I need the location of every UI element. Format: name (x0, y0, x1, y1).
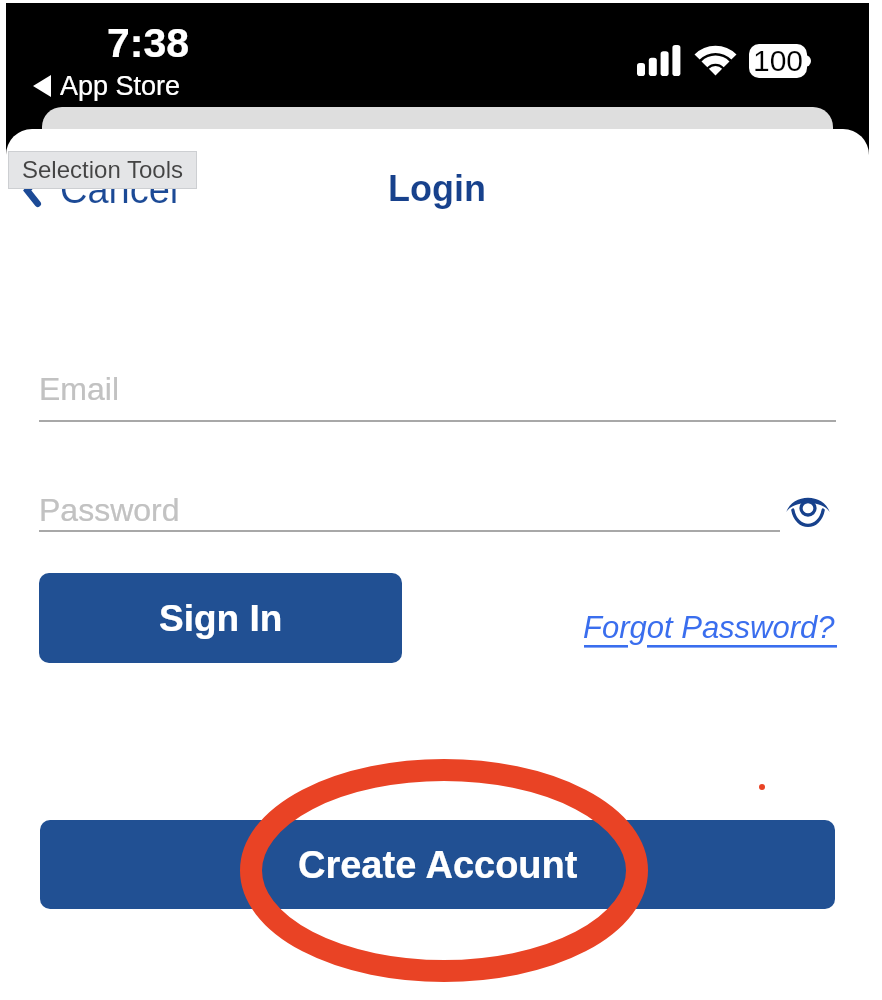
button[interactable]: Forgot Password? (583, 610, 843, 645)
staticText: 100 (753, 44, 804, 78)
button[interactable]: App Store (33, 71, 181, 101)
staticText: Create Account (298, 844, 578, 886)
staticText: Forgot Password? (583, 610, 835, 645)
button[interactable]: Sign In (39, 573, 402, 663)
staticText: 7:38 (107, 20, 190, 66)
button[interactable]: Create Account (40, 820, 835, 909)
staticText: Selection Tools (22, 156, 183, 183)
staticText: Password (39, 492, 180, 528)
staticText: App Store (60, 71, 181, 101)
staticText: Email (39, 371, 120, 407)
staticText: Sign In (159, 598, 283, 639)
button[interactable]: Show password (770, 481, 846, 539)
staticText: Cancel (60, 169, 179, 211)
button[interactable]: Cancel (24, 169, 179, 211)
staticText: Login (388, 168, 486, 208)
